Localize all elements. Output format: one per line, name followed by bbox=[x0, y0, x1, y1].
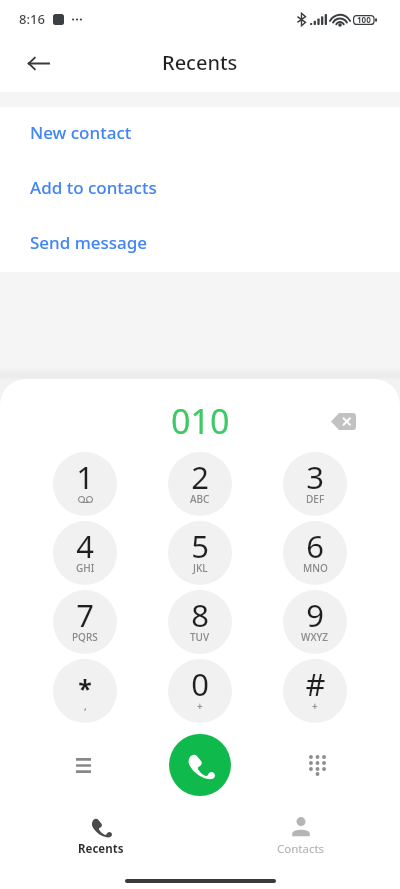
button[interactable]: 0 bbox=[168, 659, 232, 723]
button[interactable]: 9 bbox=[283, 590, 347, 654]
staticText: 4 bbox=[76, 525, 94, 567]
staticText: , bbox=[84, 699, 87, 713]
staticText: 8 bbox=[191, 594, 209, 636]
button[interactable]: Add to contacts bbox=[0, 162, 400, 217]
staticText: + bbox=[312, 699, 318, 713]
button[interactable]: Dialpad bbox=[296, 744, 338, 786]
staticText: 5 bbox=[191, 525, 209, 567]
button[interactable]: New contact bbox=[0, 107, 400, 162]
staticText: PQRS bbox=[72, 630, 98, 644]
staticText: TUV bbox=[190, 630, 210, 644]
button[interactable]: 8 bbox=[168, 590, 232, 654]
staticText: MNO bbox=[303, 561, 328, 575]
button[interactable]: 1 bbox=[53, 452, 117, 516]
staticText: Recents bbox=[78, 841, 124, 857]
button[interactable]: 7 bbox=[53, 590, 117, 654]
staticText: 9 bbox=[306, 594, 324, 636]
staticText: ABC bbox=[190, 492, 210, 506]
staticText: 3 bbox=[306, 456, 324, 498]
staticText: 7 bbox=[76, 594, 94, 636]
staticText: 1 bbox=[76, 456, 94, 498]
staticText: WXYZ bbox=[301, 630, 329, 644]
staticText: Add to contacts bbox=[30, 176, 157, 199]
button[interactable]: 4 bbox=[53, 521, 117, 585]
button[interactable]: Send message bbox=[0, 217, 400, 272]
staticText: # bbox=[305, 663, 326, 705]
button[interactable]: Contacts bbox=[201, 813, 400, 873]
staticText: 6 bbox=[306, 525, 324, 567]
staticText: 8:16 bbox=[19, 10, 45, 28]
button[interactable]: 2 bbox=[168, 452, 232, 516]
staticText: DEF bbox=[306, 492, 325, 506]
button[interactable]: # bbox=[283, 659, 347, 723]
button[interactable]: 3 bbox=[283, 452, 347, 516]
staticText: * bbox=[78, 671, 92, 705]
button[interactable]: Call bbox=[169, 734, 231, 796]
button[interactable]: Backspace bbox=[322, 400, 364, 442]
staticText: + bbox=[197, 699, 203, 713]
button[interactable]: More options bbox=[62, 744, 104, 786]
button[interactable]: Recents bbox=[1, 813, 201, 873]
staticText: 100 bbox=[357, 14, 371, 25]
staticText: JKL bbox=[193, 561, 208, 575]
staticText: Contacts bbox=[277, 841, 325, 857]
staticText: Recents bbox=[162, 49, 238, 76]
button[interactable]: * bbox=[53, 659, 117, 723]
staticText: 010 bbox=[171, 398, 230, 444]
staticText: 2 bbox=[191, 456, 209, 498]
staticText: 0 bbox=[191, 663, 209, 705]
button[interactable]: 6 bbox=[283, 521, 347, 585]
staticText: GHI bbox=[76, 561, 95, 575]
button[interactable]: 5 bbox=[168, 521, 232, 585]
staticText: Send message bbox=[30, 231, 148, 254]
button[interactable]: Back bbox=[16, 41, 61, 86]
staticText: New contact bbox=[30, 121, 132, 144]
